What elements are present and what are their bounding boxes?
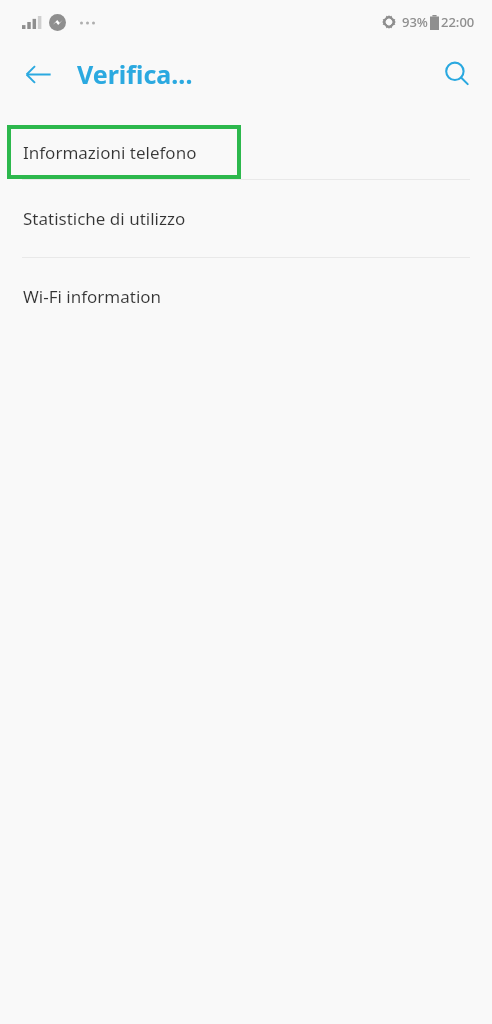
- button[interactable]: Wi-Fi information: [0, 258, 492, 335]
- button[interactable]: Statistiche di utilizzo: [0, 180, 492, 257]
- staticText: Informazioni telefono: [23, 141, 197, 164]
- button[interactable]: Informazioni telefono: [7, 125, 241, 179]
- staticText: 22:00: [441, 13, 475, 31]
- button[interactable]: Back: [14, 50, 62, 98]
- staticText: Statistiche di utilizzo: [23, 207, 186, 230]
- staticText: 93%: [402, 13, 428, 31]
- staticText: Wi-Fi information: [23, 285, 162, 308]
- staticText: Verifica...: [77, 57, 193, 91]
- button[interactable]: Search: [433, 50, 481, 98]
